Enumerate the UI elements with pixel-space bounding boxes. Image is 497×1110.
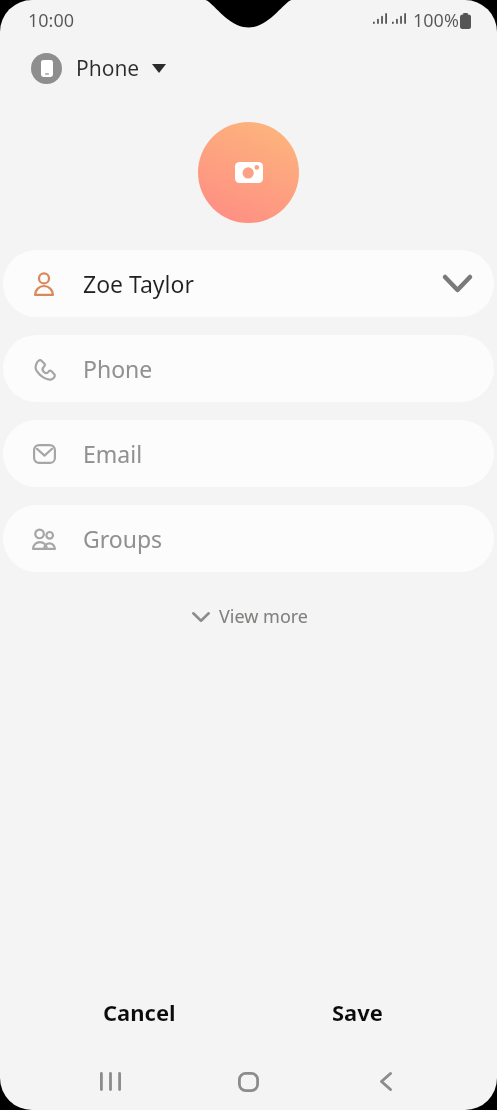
staticText: 10:00: [28, 8, 75, 33]
button[interactable]: Recents: [42, 1053, 179, 1110]
staticText: Zoe Taylor: [83, 268, 194, 299]
button[interactable]: View more: [180, 598, 321, 635]
button[interactable]: Home: [179, 1053, 317, 1110]
button[interactable]: Email: [3, 420, 494, 487]
button[interactable]: Groups: [3, 505, 494, 572]
staticText: Save: [332, 997, 383, 1027]
button[interactable]: Save: [248, 980, 467, 1044]
staticText: Phone: [83, 353, 153, 384]
staticText: View more: [219, 604, 309, 629]
staticText: Email: [83, 438, 143, 469]
button[interactable]: Add photo: [198, 122, 299, 223]
button[interactable]: Phone: [3, 335, 494, 402]
button[interactable]: Phone: [31, 53, 166, 84]
button[interactable]: Cancel: [30, 980, 248, 1044]
button[interactable]: Zoe Taylor: [3, 250, 494, 317]
staticText: 100%: [413, 8, 459, 33]
button[interactable]: Back: [317, 1053, 455, 1110]
staticText: Groups: [83, 523, 163, 554]
staticText: Cancel: [103, 997, 176, 1027]
staticText: Phone: [76, 54, 140, 83]
